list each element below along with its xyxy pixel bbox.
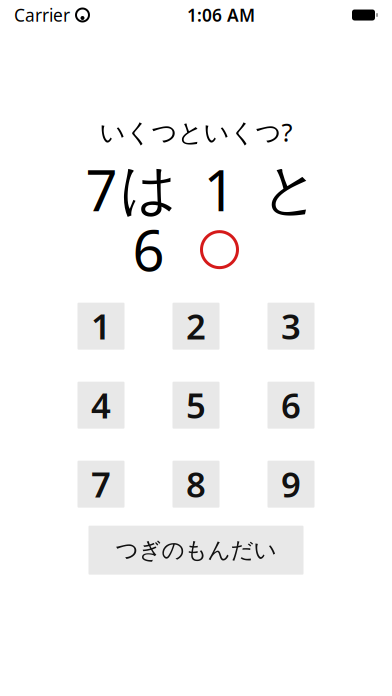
staticText: 9 xyxy=(281,461,301,507)
staticText: 7 xyxy=(85,152,117,227)
button[interactable]: 4 xyxy=(77,382,124,429)
staticText: 3 xyxy=(281,303,301,349)
staticText: Carrier xyxy=(14,3,70,26)
staticText: 1:06 AM xyxy=(187,3,255,26)
staticText: 6 xyxy=(132,212,164,287)
staticText: 4 xyxy=(91,382,111,428)
staticText: と xyxy=(262,155,319,224)
button[interactable]: 9 xyxy=(267,461,314,508)
staticText: 2 xyxy=(186,303,206,349)
button[interactable]: 2 xyxy=(172,303,219,350)
button[interactable]: 6 xyxy=(267,382,314,429)
staticText: 6 xyxy=(281,382,301,428)
button[interactable]: 8 xyxy=(172,461,219,508)
staticText: 1 xyxy=(203,152,235,227)
staticText: 5 xyxy=(186,382,206,428)
button[interactable]: 7 xyxy=(77,461,124,508)
staticText: 8 xyxy=(186,461,206,507)
staticText: 1 xyxy=(91,303,111,349)
button[interactable]: つぎのもんだい xyxy=(88,526,303,575)
staticText: 7 xyxy=(91,461,111,507)
button[interactable]: 3 xyxy=(267,303,314,350)
button[interactable]: 5 xyxy=(172,382,219,429)
button[interactable]: 1 xyxy=(77,303,124,350)
staticText: は xyxy=(120,155,177,224)
staticText: いくつといくつ? xyxy=(99,115,292,149)
staticText: つぎのもんだい xyxy=(115,536,276,564)
